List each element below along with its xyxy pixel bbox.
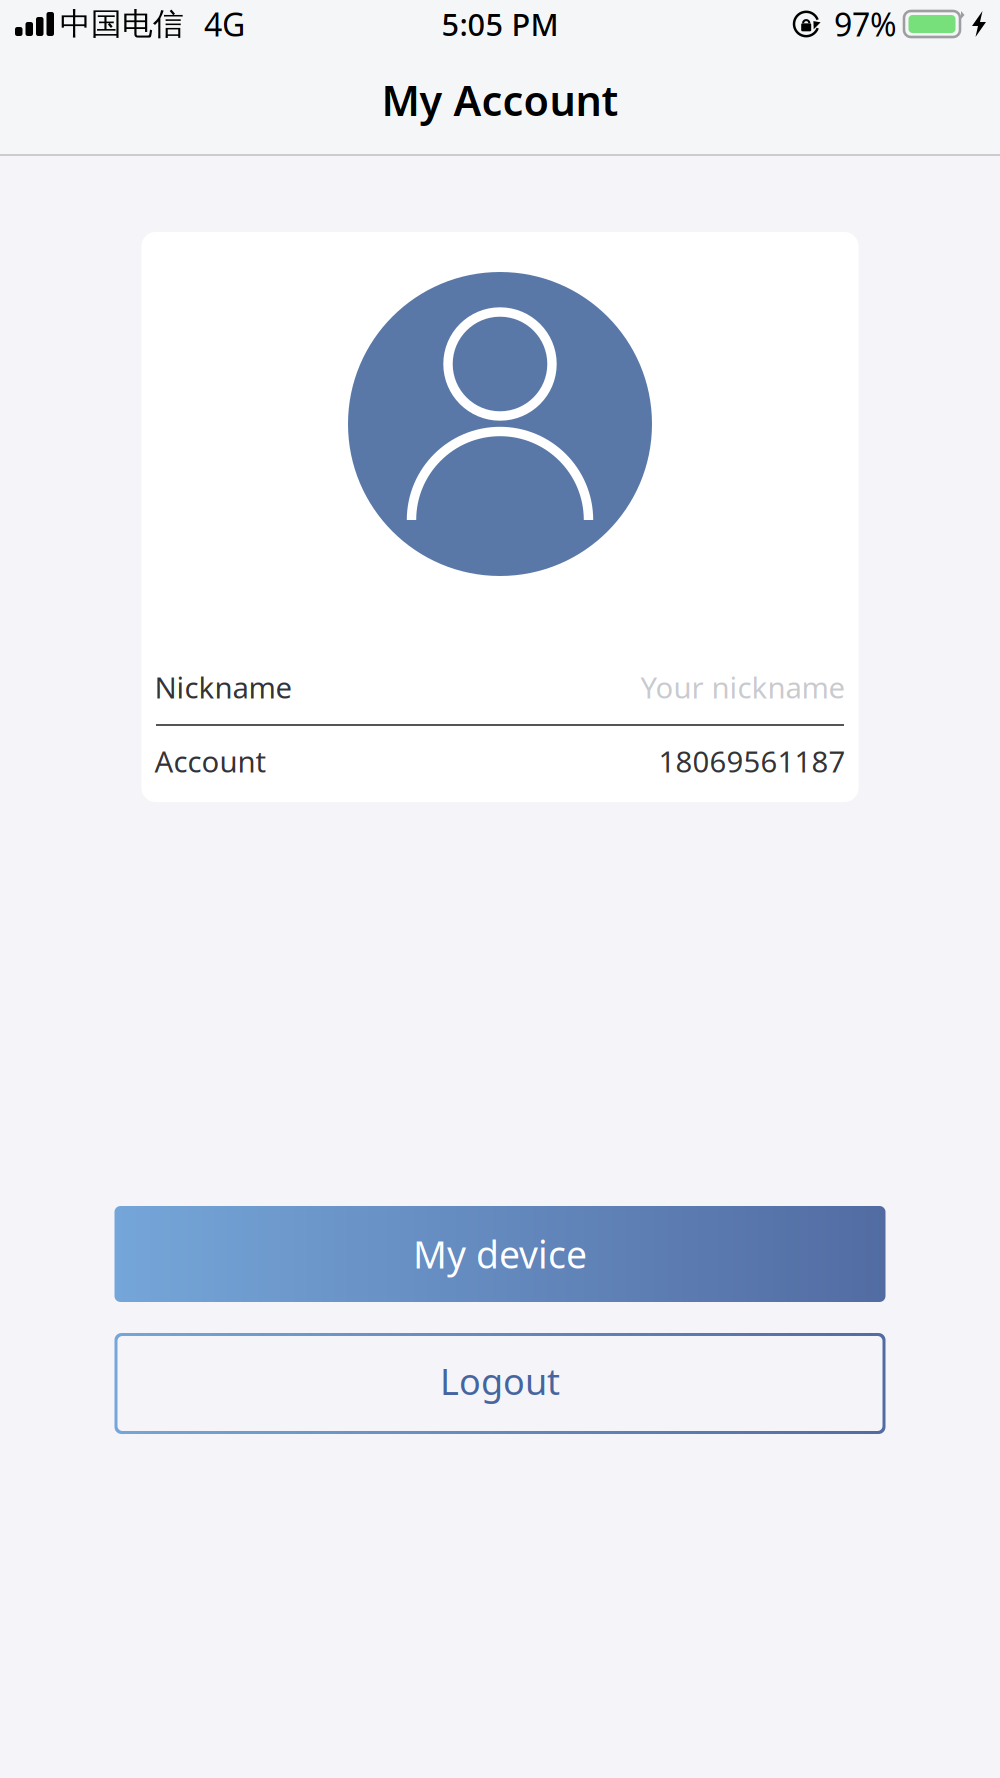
staticText: 中国电信 — [60, 5, 184, 43]
staticText: 18069561187 — [658, 741, 845, 780]
staticText: My device — [413, 1229, 587, 1279]
staticText: My Account — [381, 73, 618, 127]
staticText: Your nickname — [640, 667, 845, 706]
staticText: Logout — [440, 1357, 560, 1405]
button[interactable]: My device — [114, 1206, 885, 1302]
staticText: 4G — [204, 3, 245, 45]
staticText: 97% — [834, 3, 897, 45]
button[interactable]: Change profile photo — [348, 272, 652, 576]
staticText: Nickname — [154, 667, 292, 706]
staticText: 5:05 PM — [441, 4, 558, 44]
button[interactable]: Nickname — [154, 671, 845, 703]
staticText: Account — [154, 741, 266, 780]
button[interactable]: Logout — [114, 1333, 885, 1434]
